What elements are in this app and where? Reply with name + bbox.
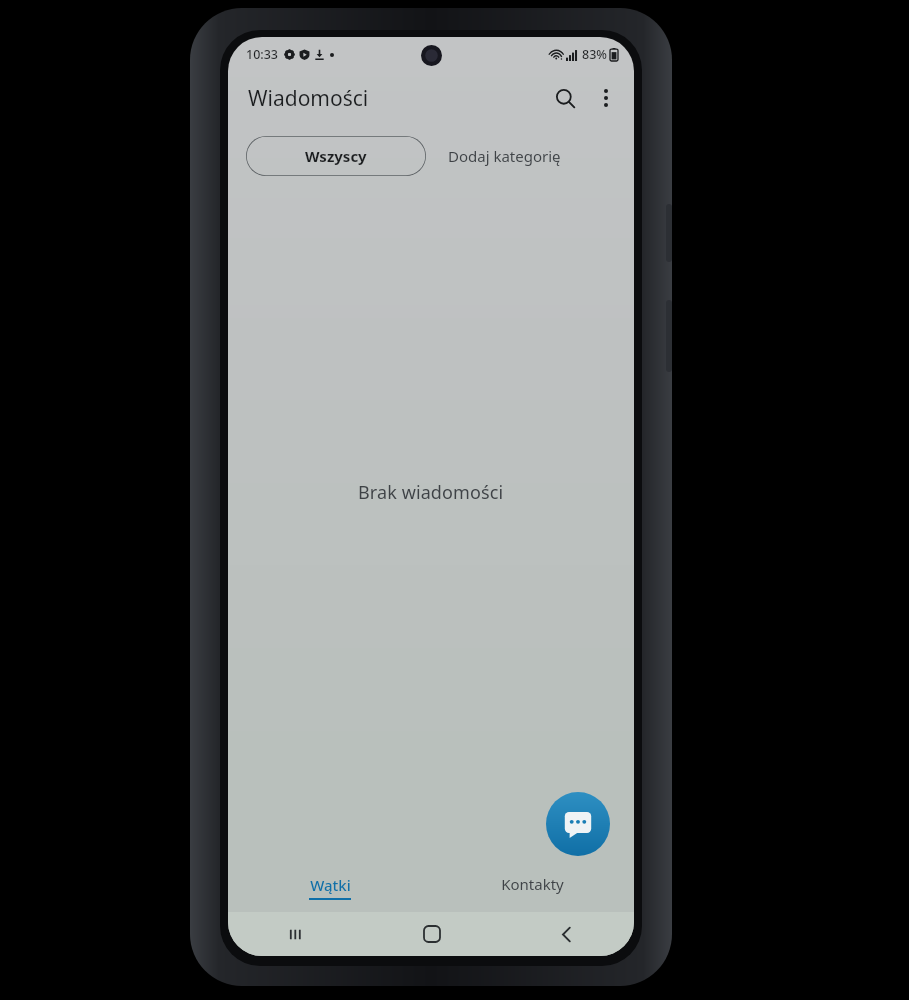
staticText: Dodaj kategorię [448, 146, 561, 166]
button[interactable]: Wstecz [499, 912, 634, 956]
staticText: Wszyscy [305, 146, 367, 166]
button[interactable]: Więcej opcji [586, 78, 626, 118]
staticText: Brak wiadomości [358, 480, 504, 505]
staticText: 10:33 [246, 46, 279, 63]
button[interactable]: Kontakty [431, 862, 634, 912]
staticText: Kontakty [501, 874, 564, 894]
staticText: 83% [582, 46, 607, 63]
button[interactable]: Ostatnie [228, 912, 364, 956]
button[interactable]: Nowa wiadomość [546, 792, 610, 856]
button[interactable]: Szukaj [544, 77, 586, 119]
button[interactable]: Dodaj kategorię [442, 136, 567, 176]
staticText: Wątki [310, 875, 351, 895]
staticText: Wiadomości [248, 84, 369, 113]
button[interactable]: Wątki [228, 862, 431, 912]
button[interactable]: Ekran główny [364, 912, 499, 956]
button[interactable]: Wszyscy [246, 136, 426, 176]
